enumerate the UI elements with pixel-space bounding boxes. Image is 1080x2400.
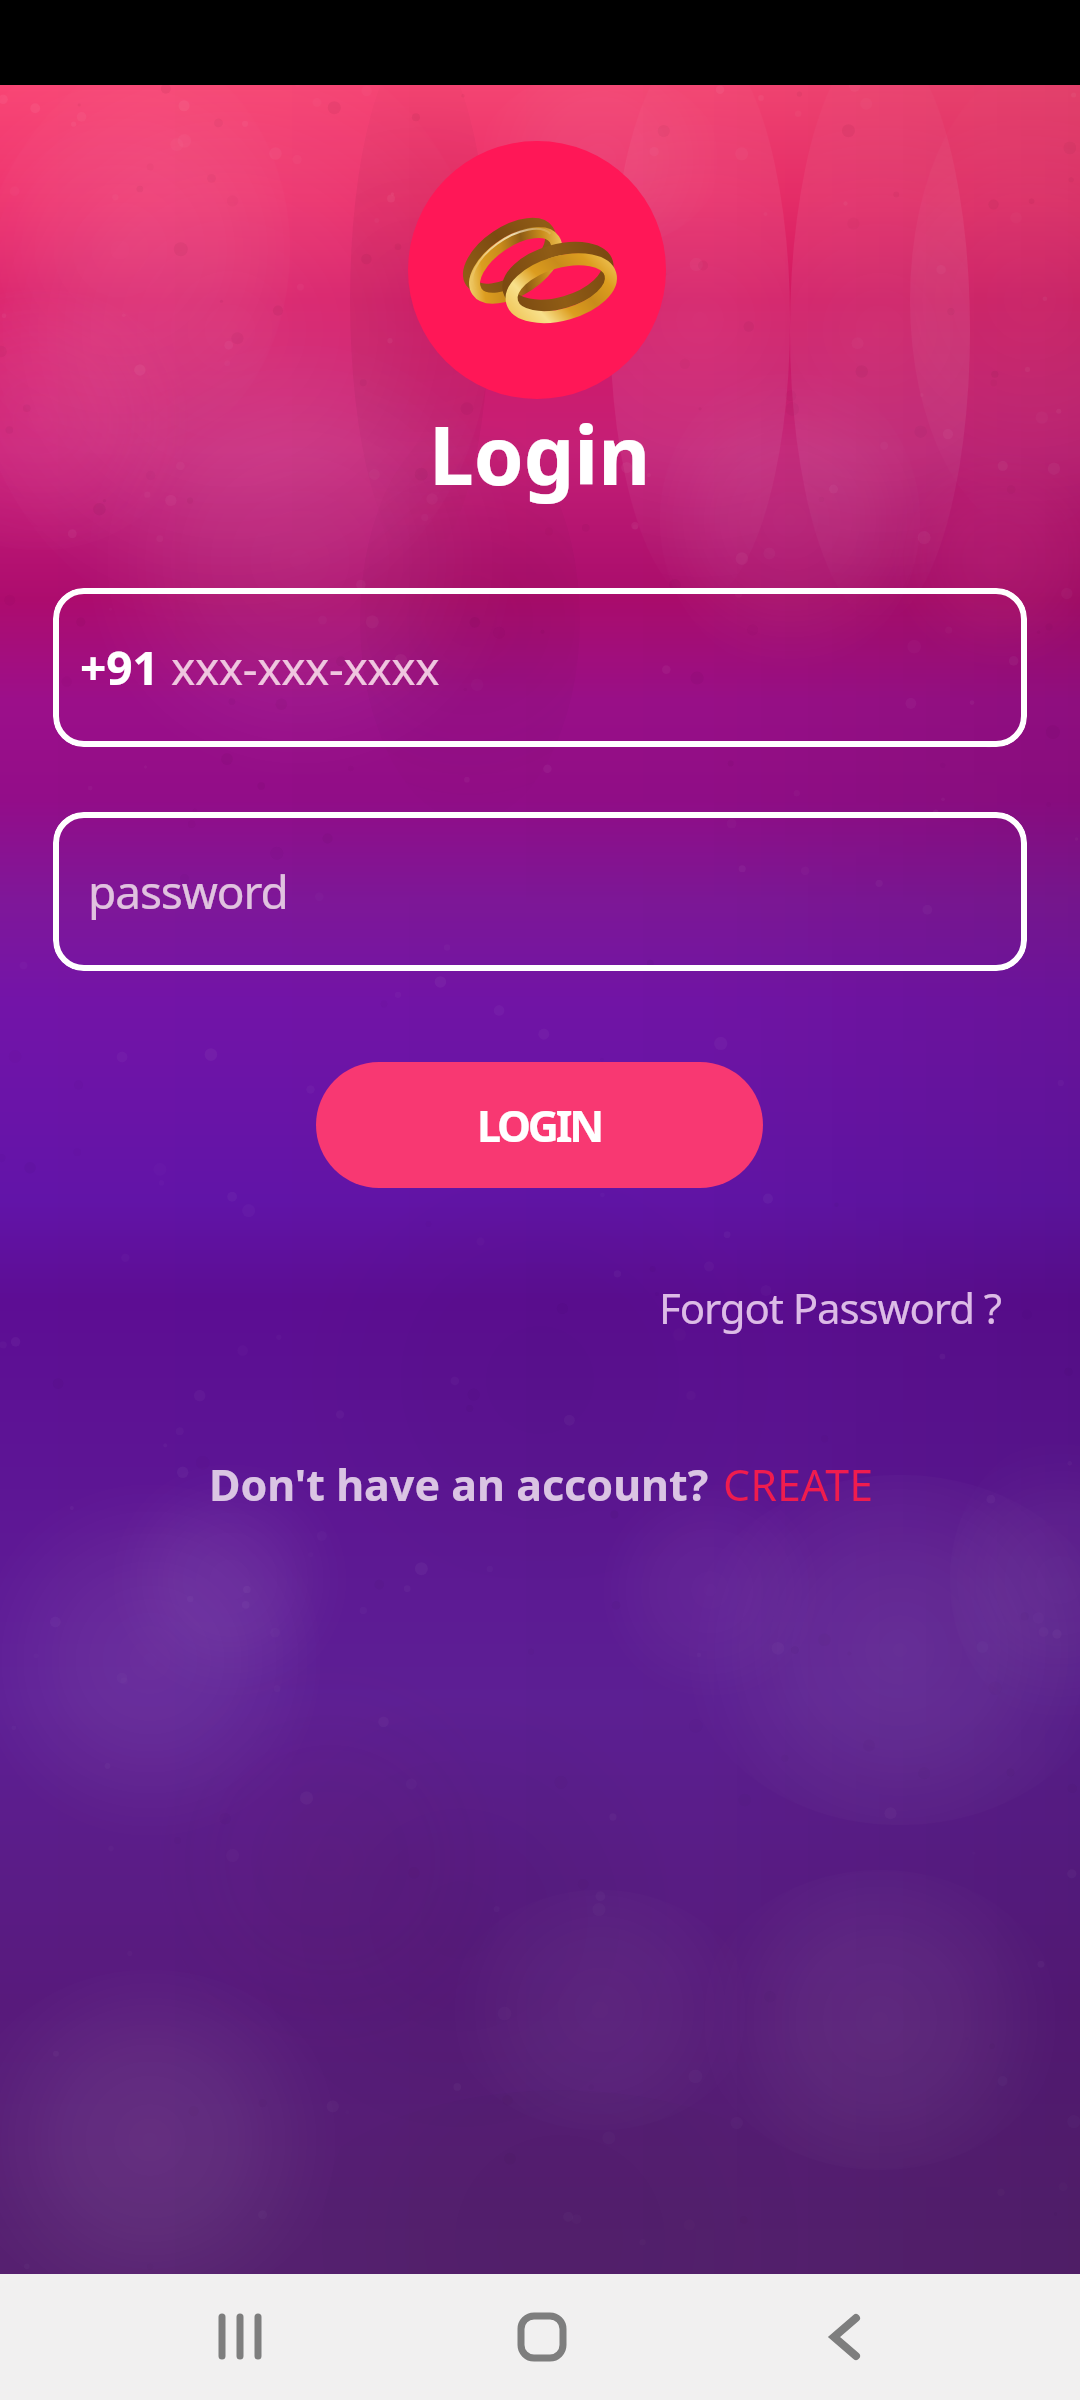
staticText: password bbox=[88, 860, 288, 923]
button[interactable]: CREATE bbox=[720, 1440, 877, 1529]
staticText: xxx-xxx-xxxx bbox=[171, 636, 440, 699]
staticText: LOGIN bbox=[477, 1096, 602, 1155]
button[interactable]: +91 bbox=[53, 588, 1027, 747]
staticText: Forgot Password ? bbox=[659, 1279, 1001, 1336]
staticText: +91 bbox=[80, 636, 171, 699]
staticText: Login bbox=[429, 399, 651, 508]
button[interactable]: Recent apps bbox=[170, 2274, 310, 2400]
button[interactable]: LOGIN bbox=[316, 1062, 763, 1188]
staticText: CREATE bbox=[723, 1455, 874, 1514]
staticText: Don't have an account? bbox=[209, 1455, 720, 1514]
button[interactable]: Forgot Password ? bbox=[653, 1264, 1007, 1351]
button[interactable]: Back bbox=[775, 2274, 915, 2400]
button[interactable]: Home bbox=[472, 2274, 612, 2400]
button[interactable]: password bbox=[53, 812, 1027, 971]
